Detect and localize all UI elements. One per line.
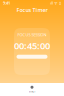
button[interactable]: Timer — [25, 83, 39, 96]
staticText: 9:41 — [3, 0, 10, 6]
staticText: FOCUS SESSION — [17, 32, 46, 37]
staticText: Focus Timer — [16, 6, 47, 14]
staticText: Timer — [28, 90, 35, 93]
staticText: ıll ᯤ ▯ — [50, 0, 61, 6]
staticText: 00:45:00 — [14, 39, 50, 52]
